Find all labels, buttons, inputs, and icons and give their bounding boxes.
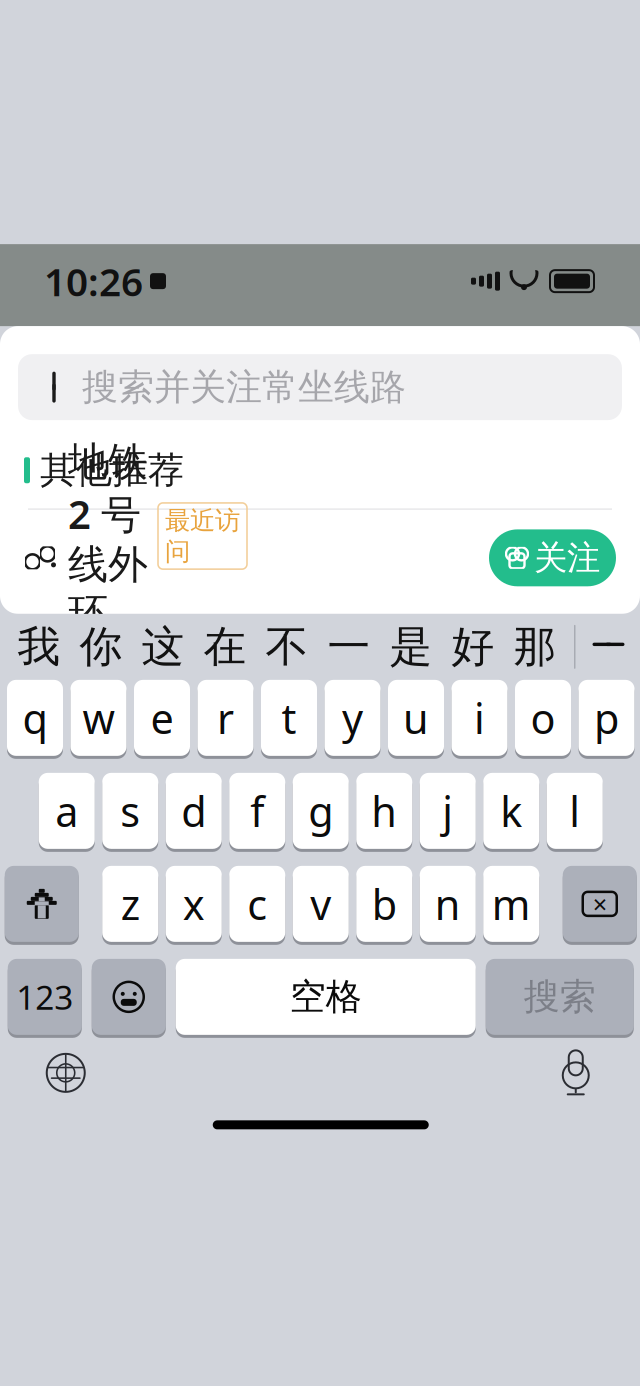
button[interactable]: 我 — [8, 614, 70, 680]
staticText: 开往 西直门 — [68, 644, 232, 682]
staticText: 在 — [203, 621, 246, 673]
button[interactable]: 这 — [132, 614, 194, 680]
button[interactable]: r — [197, 680, 253, 759]
button[interactable]: a — [39, 773, 95, 852]
staticText: 一 — [327, 621, 370, 673]
button[interactable]: q — [7, 680, 63, 759]
button[interactable]: e — [134, 680, 190, 759]
button[interactable]: Shift — [5, 866, 79, 945]
staticText: h — [371, 783, 397, 838]
staticText: i — [474, 690, 485, 745]
button[interactable]: 123 — [8, 959, 82, 1038]
button[interactable]: z — [102, 866, 158, 945]
staticText: p — [594, 690, 619, 745]
staticText: × — [593, 887, 607, 921]
button[interactable]: j — [420, 773, 476, 852]
button[interactable]: 搜索 — [486, 959, 634, 1038]
staticText: m — [492, 876, 531, 931]
button[interactable]: h — [356, 773, 412, 852]
button[interactable]: 不 — [256, 614, 318, 680]
button[interactable]: 搜索并关注常坐线路 — [18, 354, 622, 420]
staticText: t — [281, 690, 296, 745]
button[interactable]: 在 — [194, 614, 256, 680]
button[interactable]: w — [70, 680, 126, 759]
staticText: b — [372, 876, 397, 931]
staticText: f — [250, 783, 264, 838]
staticText: r — [217, 690, 234, 745]
button[interactable]: m — [483, 866, 539, 945]
button[interactable]: 好 — [442, 614, 504, 680]
button[interactable]: 那 — [504, 614, 566, 680]
staticText: k — [500, 783, 522, 838]
button[interactable]: k — [483, 773, 539, 852]
button[interactable]: p — [578, 680, 634, 759]
button[interactable]: u — [388, 680, 444, 759]
button[interactable]: Dictation — [541, 1043, 611, 1103]
staticText: o — [530, 690, 555, 745]
staticText: x — [183, 876, 205, 931]
staticText: 我 — [17, 621, 60, 673]
staticText: 不 — [265, 621, 308, 673]
button[interactable]: y — [324, 680, 380, 759]
staticText: 最近访问 — [165, 505, 240, 567]
button[interactable]: t — [261, 680, 317, 759]
button[interactable]: l — [547, 773, 603, 852]
button[interactable]: s — [102, 773, 158, 852]
staticText: 那 — [513, 621, 556, 673]
staticText: 空格 — [290, 975, 362, 1019]
staticText: c — [247, 876, 267, 931]
staticText: 关注 — [534, 537, 600, 578]
staticText: z — [121, 876, 140, 931]
staticText: d — [181, 783, 206, 838]
button[interactable]: 空格 — [176, 959, 476, 1038]
staticText: s — [120, 783, 140, 838]
button[interactable]: f — [229, 773, 285, 852]
staticText: 地铁 2 号线外环 — [68, 434, 148, 638]
staticText: y — [342, 690, 363, 745]
button[interactable]: b — [356, 866, 412, 945]
button[interactable]: Hide candidates — [575, 614, 640, 680]
button[interactable]: d — [166, 773, 222, 852]
staticText: 这 — [141, 621, 184, 673]
button[interactable]: c — [229, 866, 285, 945]
staticText: 是 — [389, 621, 432, 673]
staticText: q — [22, 690, 47, 745]
staticText: e — [150, 690, 173, 745]
button[interactable]: 是 — [380, 614, 442, 680]
button[interactable]: g — [293, 773, 349, 852]
button[interactable]: 一 — [318, 614, 380, 680]
staticText: 其他推荐 — [40, 448, 184, 492]
button[interactable]: x — [166, 866, 222, 945]
button[interactable]: 地铁 2 号线外环 — [0, 510, 640, 606]
button[interactable]: Switch keyboard — [31, 1043, 101, 1103]
staticText: 你 — [79, 621, 122, 673]
button[interactable]: v — [293, 866, 349, 945]
staticText: v — [310, 876, 331, 931]
button[interactable]: o — [515, 680, 571, 759]
staticText: 搜索 — [524, 975, 596, 1019]
staticText: l — [569, 783, 580, 838]
staticText: j — [442, 783, 453, 838]
staticText: n — [435, 876, 461, 931]
staticText: 搜索并关注常坐线路 — [82, 365, 406, 409]
staticText: 10:26 — [44, 255, 143, 307]
button[interactable]: 关注 — [489, 529, 616, 586]
staticText: u — [403, 690, 429, 745]
button[interactable]: 你 — [70, 614, 132, 680]
button[interactable]: n — [420, 866, 476, 945]
button[interactable]: Emoji — [92, 959, 166, 1038]
staticText: a — [55, 783, 78, 838]
staticText: g — [308, 783, 333, 838]
button[interactable]: Delete — [563, 866, 637, 945]
staticText: w — [82, 690, 114, 745]
button[interactable]: i — [451, 680, 507, 759]
staticText: 123 — [16, 975, 73, 1019]
staticText: 好 — [451, 621, 494, 673]
